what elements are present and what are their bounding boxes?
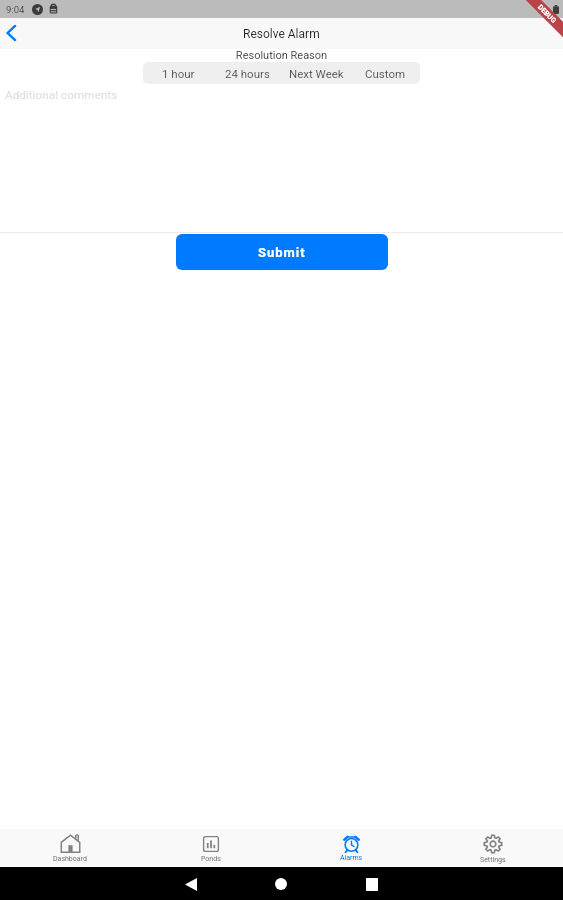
staticText: Next Week (289, 67, 344, 80)
button[interactable]: Settings (422, 829, 563, 867)
staticText: Resolution Reason (0, 49, 563, 62)
staticText: Dashboard (53, 855, 87, 863)
staticText: 24 hours (225, 67, 270, 80)
staticText: DEBUG (536, 3, 558, 25)
button[interactable]: Recent apps (357, 869, 387, 899)
staticText: Settings (480, 856, 506, 864)
staticText: Submit (258, 245, 306, 260)
button[interactable]: Dashboard (0, 829, 140, 867)
button[interactable]: Custom (351, 62, 420, 84)
button[interactable]: 24 hours (213, 62, 282, 84)
staticText: Ponds (201, 855, 221, 863)
button[interactable]: Back (0, 20, 24, 46)
staticText: Custom (365, 67, 406, 80)
staticText: Alarms (340, 854, 363, 862)
staticText: 1 hour (162, 67, 195, 80)
button[interactable]: Home (266, 869, 296, 899)
button[interactable]: Ponds (140, 829, 281, 867)
button[interactable]: Back (176, 869, 206, 899)
button[interactable]: Alarms (281, 829, 422, 867)
button[interactable]: 1 hour (143, 62, 213, 84)
staticText: Resolve Alarm (243, 27, 320, 41)
button[interactable]: Next Week (282, 62, 351, 84)
button[interactable]: Submit (176, 234, 388, 270)
staticText: 9:04 (6, 4, 25, 15)
staticText: Additional comments (5, 88, 118, 102)
